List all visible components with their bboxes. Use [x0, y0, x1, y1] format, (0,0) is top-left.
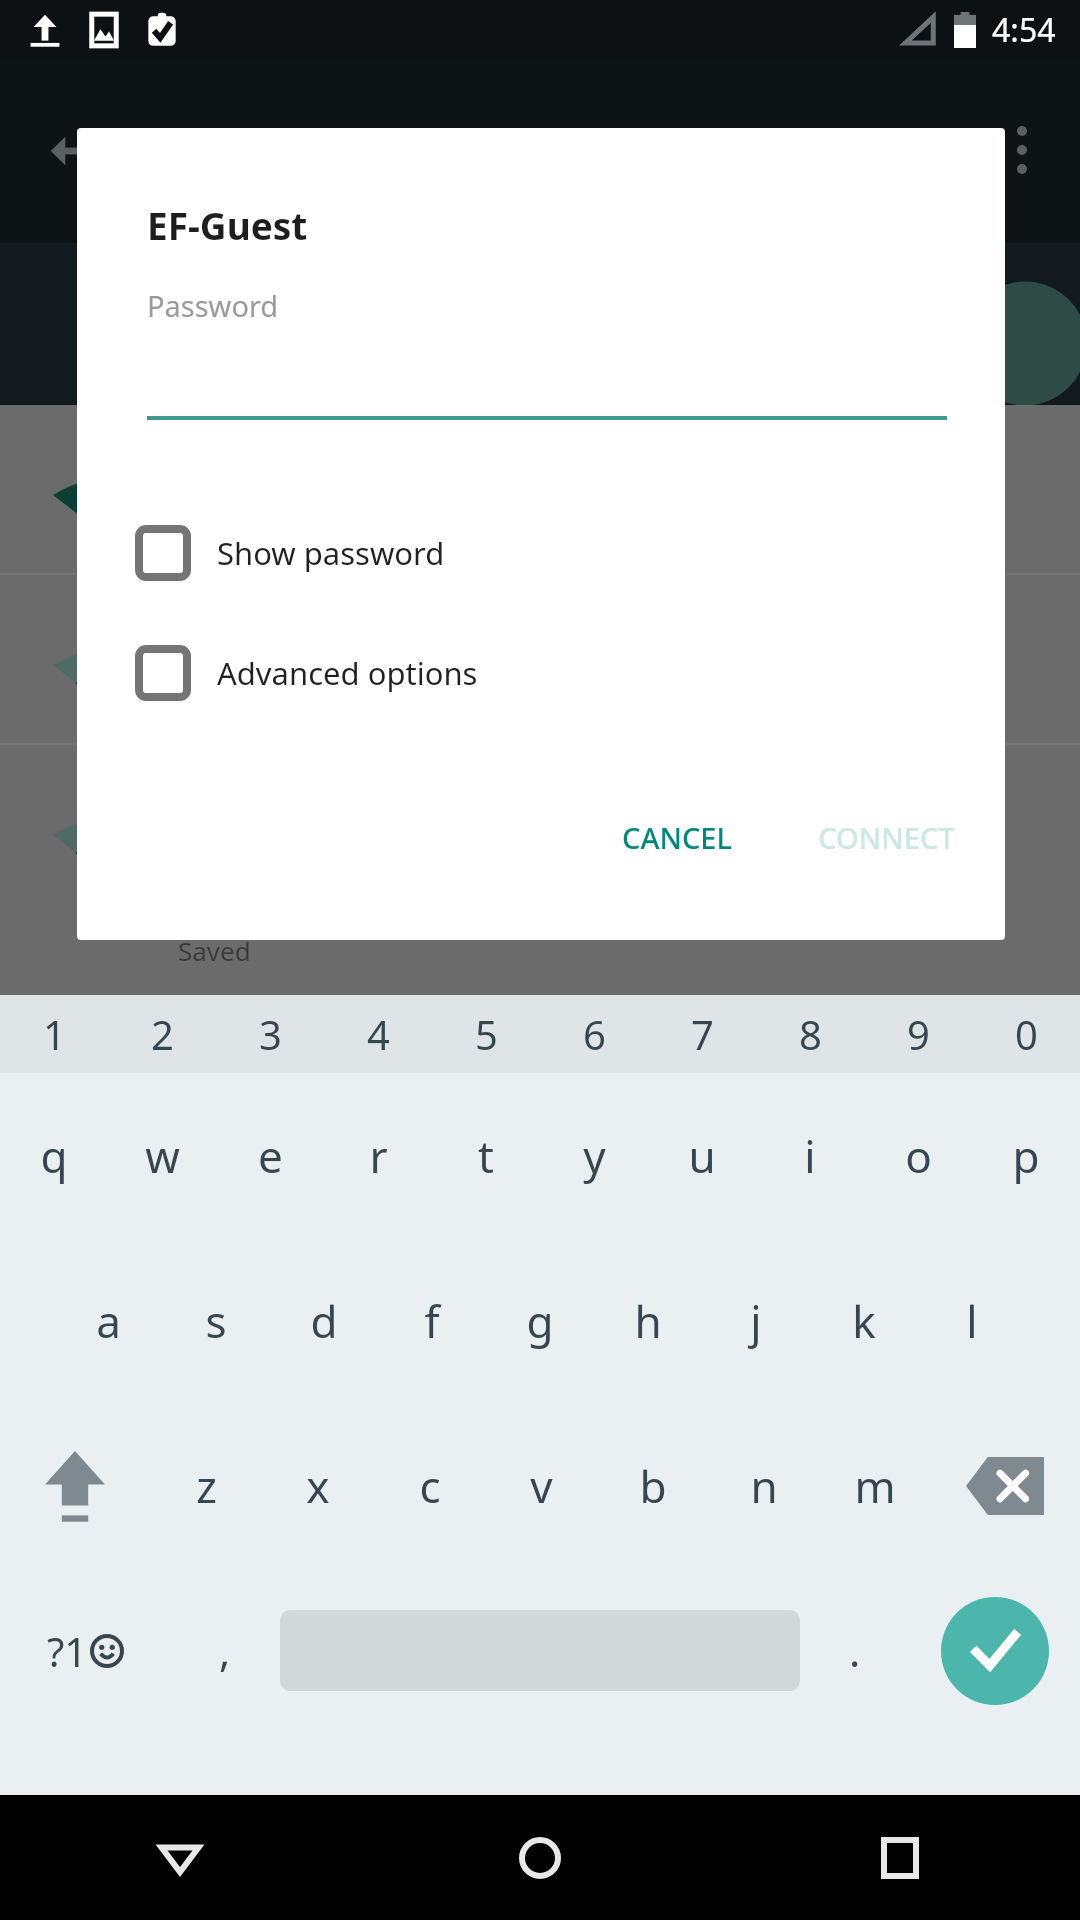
button[interactable]: Shift: [0, 1403, 150, 1568]
button[interactable]: CONNECT: [796, 796, 977, 878]
staticText: CANCEL: [622, 818, 732, 857]
staticText: Show password: [217, 532, 445, 574]
button[interactable]: s: [162, 1238, 270, 1403]
button[interactable]: b: [597, 1403, 708, 1568]
staticText: t: [478, 1126, 494, 1186]
staticText: EF-Guest: [147, 200, 308, 250]
staticText: d: [310, 1291, 338, 1351]
staticText: n: [750, 1456, 778, 1516]
button[interactable]: 1: [0, 995, 108, 1073]
staticText: x: [306, 1456, 330, 1516]
button[interactable]: t: [432, 1073, 540, 1238]
button[interactable]: .: [800, 1568, 910, 1733]
button[interactable]: ?1: [0, 1568, 170, 1733]
button[interactable]: Advanced options: [135, 628, 635, 718]
button[interactable]: 6: [540, 995, 648, 1073]
button[interactable]: Home: [360, 1795, 720, 1920]
button[interactable]: y: [540, 1073, 648, 1238]
button[interactable]: 0: [972, 995, 1080, 1073]
button[interactable]: d: [270, 1238, 378, 1403]
staticText: 1: [43, 1007, 66, 1061]
staticText: 7: [691, 1007, 714, 1061]
staticText: o: [905, 1126, 932, 1186]
staticText: Advanced options: [217, 652, 478, 694]
button[interactable]: Recents: [720, 1795, 1080, 1920]
button[interactable]: c: [374, 1403, 486, 1568]
button[interactable]: Back: [0, 1795, 360, 1920]
button[interactable]: 4: [324, 995, 432, 1073]
staticText: .: [849, 1622, 861, 1679]
button[interactable]: 9: [864, 995, 972, 1073]
staticText: 4:54: [992, 8, 1056, 52]
staticText: 4:54: [992, 8, 1056, 52]
button[interactable]: 7: [648, 995, 756, 1073]
button[interactable]: z: [150, 1403, 262, 1568]
button[interactable]: n: [708, 1403, 819, 1568]
button[interactable]: 8: [756, 995, 864, 1073]
staticText: q: [40, 1126, 68, 1186]
button[interactable]: i: [756, 1073, 864, 1238]
staticText: u: [688, 1126, 716, 1186]
staticText: 9: [907, 1007, 930, 1061]
button[interactable]: x: [262, 1403, 374, 1568]
staticText: 0: [1015, 1007, 1038, 1061]
staticText: j: [750, 1291, 762, 1351]
button[interactable]: j: [702, 1238, 810, 1403]
staticText: s: [205, 1291, 227, 1351]
staticText: l: [966, 1291, 978, 1351]
staticText: 3: [259, 1007, 282, 1061]
staticText: g: [526, 1291, 554, 1351]
staticText: a: [96, 1291, 121, 1351]
staticText: h: [634, 1291, 662, 1351]
button[interactable]: More options: [982, 110, 1062, 190]
button[interactable]: f: [378, 1238, 486, 1403]
staticText: CONNECT: [818, 818, 955, 857]
button[interactable]: CANCEL: [600, 796, 754, 878]
staticText: Saved: [178, 933, 251, 968]
button[interactable]: Back: [30, 115, 102, 187]
button[interactable]: u: [648, 1073, 756, 1238]
staticText: Password: [147, 286, 279, 325]
staticText: 5: [475, 1007, 498, 1061]
button[interactable]: w: [108, 1073, 216, 1238]
staticText: ,: [219, 1622, 231, 1679]
staticText: e: [258, 1126, 283, 1186]
staticText: r: [369, 1126, 388, 1186]
staticText: z: [196, 1456, 217, 1516]
staticText: p: [1012, 1126, 1040, 1186]
button[interactable]: p: [972, 1073, 1080, 1238]
staticText: b: [639, 1456, 667, 1516]
staticText: v: [530, 1456, 553, 1516]
button[interactable]: a: [54, 1238, 162, 1403]
button[interactable]: Backspace: [930, 1403, 1080, 1568]
staticText: k: [852, 1291, 876, 1351]
button[interactable]: 2: [108, 995, 216, 1073]
staticText: 8: [799, 1007, 822, 1061]
button[interactable]: 3: [216, 995, 324, 1073]
button[interactable]: m: [819, 1403, 930, 1568]
button[interactable]: q: [0, 1073, 108, 1238]
button[interactable]: v: [486, 1403, 597, 1568]
staticText: w: [145, 1126, 180, 1186]
button[interactable]: h: [594, 1238, 702, 1403]
staticText: m: [854, 1456, 896, 1516]
button[interactable]: e: [216, 1073, 324, 1238]
button[interactable]: o: [864, 1073, 972, 1238]
button[interactable]: l: [918, 1238, 1026, 1403]
button[interactable]: k: [810, 1238, 918, 1403]
staticText: 6: [583, 1007, 606, 1061]
staticText: 2: [151, 1007, 174, 1061]
staticText: c: [419, 1456, 441, 1516]
staticText: 4: [367, 1007, 390, 1061]
button[interactable]: 5: [432, 995, 540, 1073]
button[interactable]: ,: [170, 1568, 280, 1733]
button[interactable]: g: [486, 1238, 594, 1403]
staticText: ?1: [47, 1624, 88, 1678]
button[interactable]: Show password: [135, 508, 635, 598]
button[interactable]: Done: [910, 1568, 1080, 1733]
staticText: i: [804, 1126, 816, 1186]
staticText: y: [583, 1126, 606, 1186]
staticText: f: [424, 1291, 440, 1351]
button[interactable]: r: [324, 1073, 432, 1238]
